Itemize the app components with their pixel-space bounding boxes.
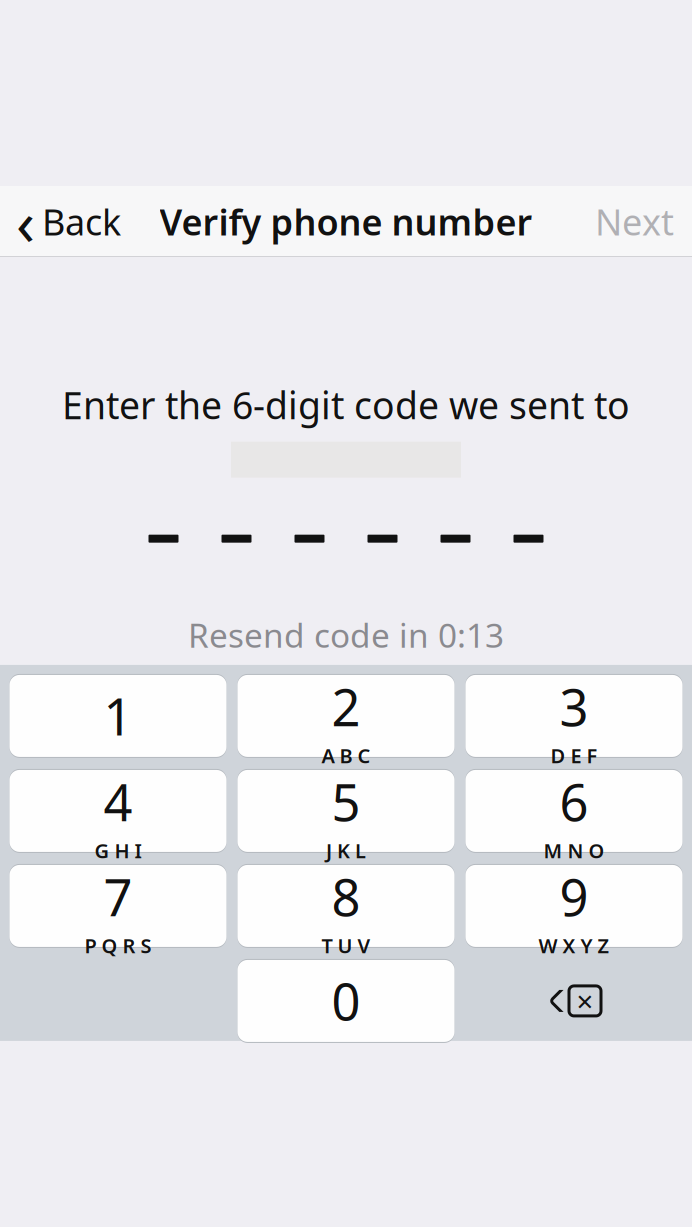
staticText: W X Y Z: [538, 932, 609, 959]
staticText: ‹: [16, 181, 35, 262]
button[interactable]: Delete: [465, 960, 682, 1042]
staticText: 7: [103, 863, 132, 930]
staticText: G H I: [94, 837, 141, 864]
staticText: A B C: [321, 742, 370, 769]
button[interactable]: 7: [9, 864, 226, 948]
staticText: ×: [576, 981, 593, 1020]
staticText: 6: [559, 768, 588, 835]
staticText: T U V: [321, 932, 370, 959]
button[interactable]: ‹: [0, 186, 137, 257]
button[interactable]: 9: [465, 864, 682, 948]
button[interactable]: 5: [237, 769, 454, 853]
button[interactable]: 6: [465, 769, 682, 853]
staticText: P Q R S: [84, 932, 151, 959]
staticText: Verify phone number: [159, 198, 532, 245]
button[interactable]: Next: [577, 186, 692, 257]
staticText: J K L: [326, 837, 366, 864]
staticText: Back: [42, 198, 121, 245]
staticText: D E F: [550, 742, 597, 769]
button[interactable]: 8: [237, 864, 454, 948]
button[interactable]: 4: [9, 769, 226, 853]
staticText: 4: [103, 768, 132, 835]
button[interactable]: 3: [465, 674, 682, 758]
staticText: 2: [331, 673, 360, 740]
staticText: 1: [103, 682, 132, 750]
button[interactable]: 0: [237, 959, 454, 1043]
staticText: 5: [331, 768, 360, 835]
staticText: Enter the 6-digit code we sent to: [62, 380, 630, 430]
staticText: 9: [559, 863, 588, 930]
staticText: Resend code in 0:13: [188, 613, 504, 657]
button[interactable]: 2: [237, 674, 454, 758]
staticText: 0: [331, 967, 360, 1035]
staticText: Next: [595, 198, 674, 245]
staticText: 3: [559, 673, 588, 740]
staticText: 8: [331, 863, 360, 930]
staticText: M N O: [543, 837, 604, 864]
button[interactable]: 1: [9, 674, 226, 758]
